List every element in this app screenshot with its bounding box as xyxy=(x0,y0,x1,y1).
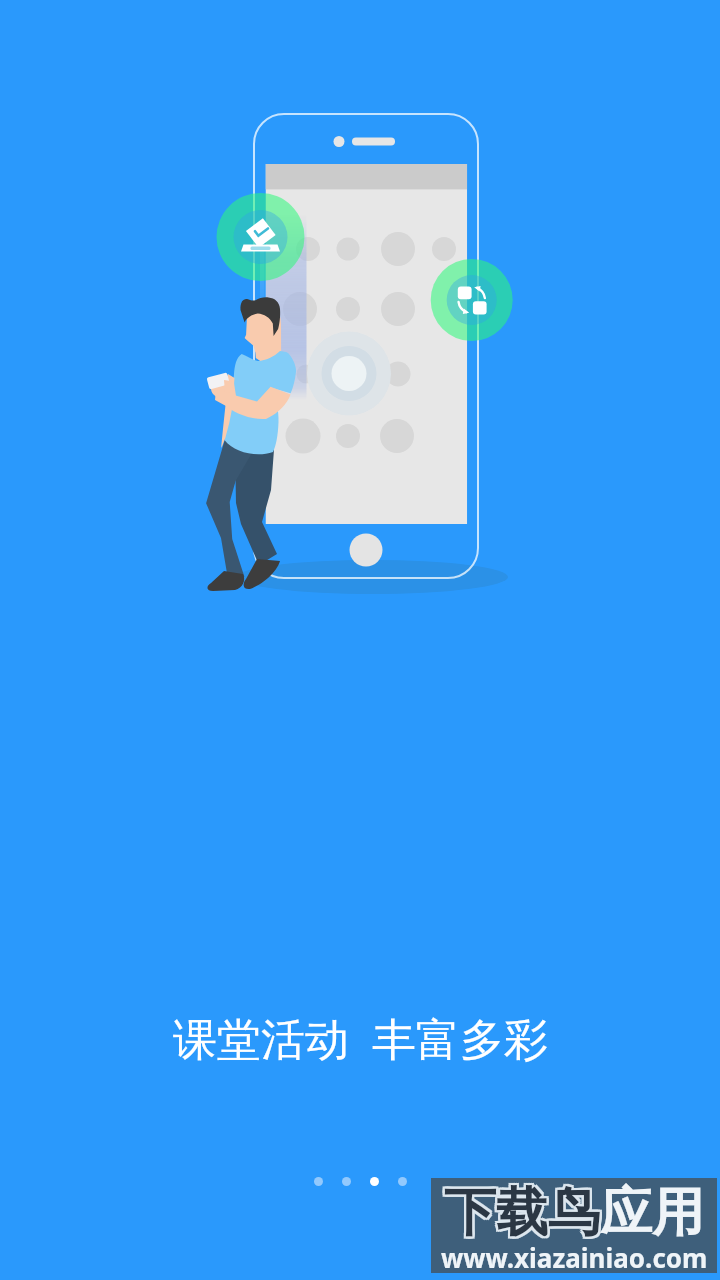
staticText: 应用 xyxy=(602,1178,706,1244)
staticText: 应用 xyxy=(600,1180,704,1246)
button[interactable]: Page 3 xyxy=(360,1171,388,1191)
staticText: 应用 xyxy=(602,1180,706,1246)
staticText: 课堂活动 丰富多彩 xyxy=(173,1008,548,1068)
staticText: 下载鸟 xyxy=(442,1182,598,1248)
staticText: 应用 xyxy=(600,1178,704,1244)
staticText: 应用 xyxy=(598,1180,702,1246)
staticText: 应用 xyxy=(598,1178,702,1244)
staticText: 应用 xyxy=(602,1182,706,1248)
button[interactable]: Page 4 xyxy=(388,1171,416,1191)
staticText: 应用 xyxy=(600,1182,704,1248)
button[interactable]: Page 2 xyxy=(332,1171,360,1191)
staticText: www.xiazainiao.com xyxy=(441,1240,708,1275)
staticText: 下载鸟 xyxy=(444,1178,600,1244)
staticText: 下载鸟 xyxy=(442,1178,598,1244)
staticText: 下载鸟 xyxy=(446,1182,602,1248)
staticText: 下载鸟 xyxy=(446,1178,602,1244)
staticText: 应用 xyxy=(598,1182,702,1248)
staticText: 下载鸟 xyxy=(446,1180,602,1246)
staticText: 应用 xyxy=(600,1180,704,1246)
staticText: 下载鸟 xyxy=(444,1180,600,1246)
staticText: 下载鸟 xyxy=(444,1182,600,1248)
button[interactable]: Page 1 xyxy=(304,1171,332,1191)
staticText: 下载鸟 xyxy=(444,1180,600,1246)
staticText: 下载鸟 xyxy=(442,1180,598,1246)
